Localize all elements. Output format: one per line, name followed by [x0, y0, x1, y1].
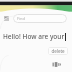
button[interactable]: Menu — [3, 15, 10, 22]
staticText: delete — [51, 48, 65, 54]
button[interactable]: delete — [48, 47, 68, 55]
button[interactable]: Hello! How are your — [3, 32, 69, 41]
staticText: Find — [17, 16, 26, 21]
button[interactable]: Keyboard — [51, 60, 62, 68]
staticText: Hello! How are your — [3, 32, 65, 41]
button[interactable]: Find — [13, 14, 67, 23]
